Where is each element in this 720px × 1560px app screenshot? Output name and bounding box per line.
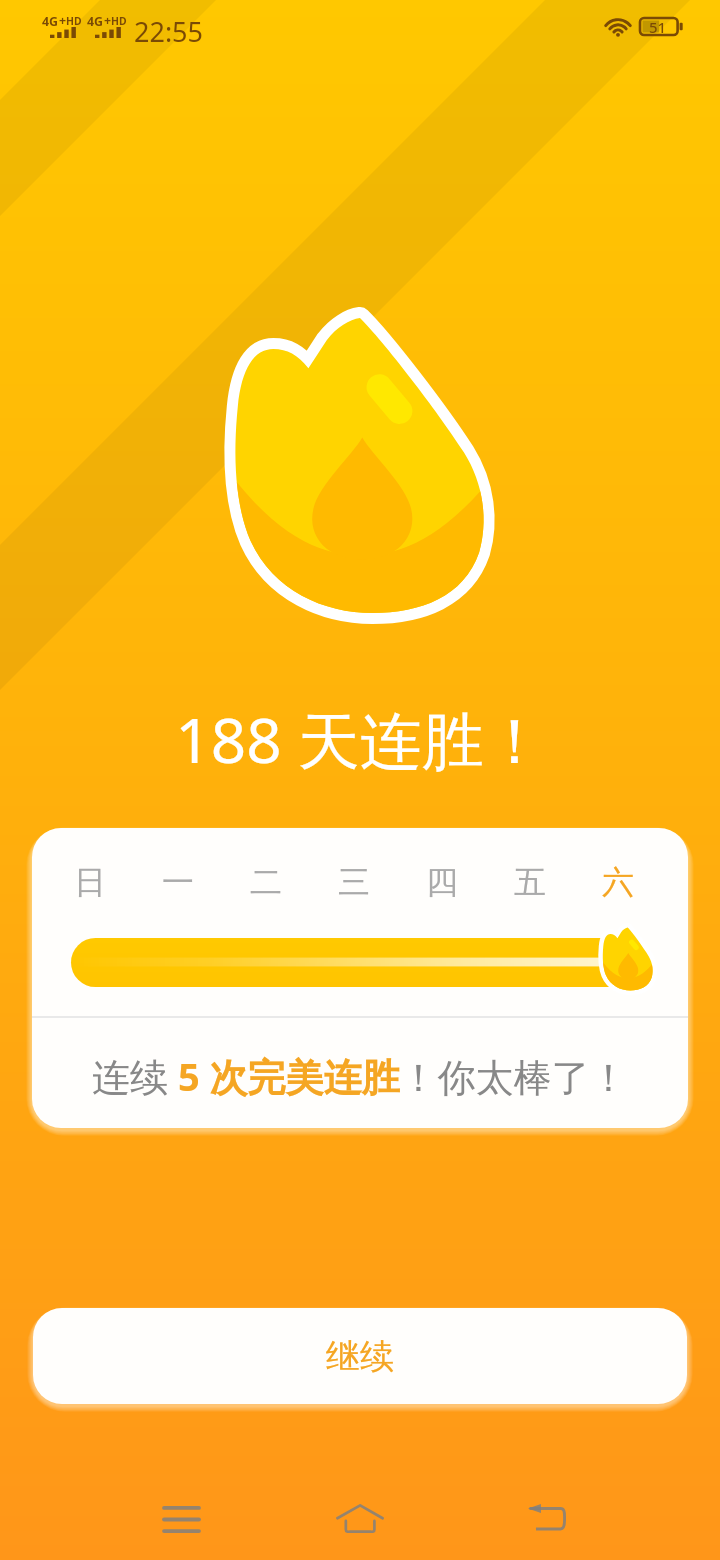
staticText: 六 (602, 862, 634, 902)
staticText: 51 (649, 17, 667, 36)
staticText: + (104, 12, 112, 29)
button[interactable]: 继续 (33, 1308, 687, 1404)
staticText: 日 (74, 862, 106, 902)
staticText: HD (111, 14, 127, 28)
staticText: 四 (426, 862, 458, 902)
staticText: 三 (338, 862, 370, 902)
staticText: 一 (162, 862, 194, 902)
staticText: HD (66, 14, 82, 28)
staticText: 4G (87, 13, 104, 30)
button[interactable]: Recent apps (150, 1486, 212, 1552)
staticText: 五 (514, 862, 546, 902)
staticText: 二 (250, 862, 282, 902)
staticText: 继续 (326, 1335, 394, 1378)
staticText: + (59, 12, 67, 29)
button[interactable]: Home (329, 1485, 391, 1551)
staticText: 22:55 (134, 13, 204, 50)
staticText: 188 天连胜！ (175, 697, 546, 782)
staticText: 4G (42, 13, 59, 30)
staticText: 连续 5 次完美连胜！你太棒了！ (92, 1050, 628, 1102)
button[interactable]: Back (516, 1484, 578, 1550)
